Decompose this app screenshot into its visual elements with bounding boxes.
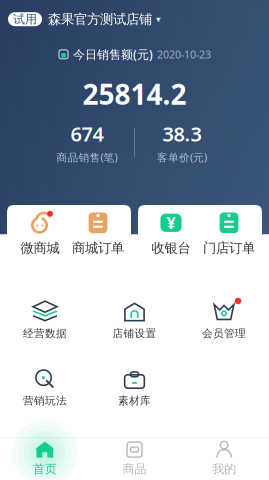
staticText: 会员管理	[202, 327, 246, 340]
staticText: 素材库	[118, 394, 151, 407]
staticText: 经营数据	[23, 327, 67, 340]
button[interactable]: 营销玩法	[0, 366, 90, 407]
staticText: 我的	[212, 462, 236, 476]
staticText: 商品销售(笔)	[56, 150, 117, 164]
button[interactable]: 素材库	[90, 366, 179, 407]
button[interactable]: 试用	[8, 12, 42, 26]
button[interactable]: ¥	[142, 204, 200, 262]
button[interactable]: 商城订单	[69, 204, 127, 262]
staticText: 营销玩法	[23, 394, 67, 407]
staticText: 38.3	[162, 120, 201, 147]
staticText: 25814.2	[82, 75, 186, 112]
staticText: 首页	[33, 462, 57, 476]
button[interactable]: 商品	[90, 434, 179, 480]
staticText: 微商城	[20, 240, 59, 256]
button[interactable]: 我的	[179, 434, 269, 480]
button[interactable]: 店铺设置	[90, 299, 179, 340]
button[interactable]: 首页	[0, 434, 90, 480]
staticText: 门店订单	[203, 240, 255, 256]
staticText: 店铺设置	[112, 327, 156, 340]
button[interactable]: 门店订单	[200, 204, 258, 262]
staticText: 2020-10-23	[157, 47, 211, 61]
staticText: 客单价(元)	[157, 150, 207, 164]
staticText: ¥	[166, 212, 175, 233]
staticText: 商品	[122, 462, 146, 476]
staticText: 森果官方测试店铺	[48, 11, 152, 27]
staticText: ▾	[156, 14, 161, 24]
staticText: 今日销售额(元)	[73, 46, 153, 62]
button[interactable]: 森果官方测试店铺	[48, 11, 161, 27]
staticText: 试用	[13, 12, 37, 26]
staticText: 收银台	[151, 240, 190, 256]
staticText: 商城订单	[72, 240, 124, 256]
button[interactable]: 会员管理	[179, 299, 269, 340]
button[interactable]: 微商城	[11, 204, 69, 262]
button[interactable]: 经营数据	[0, 299, 90, 340]
staticText: 674	[70, 120, 103, 147]
